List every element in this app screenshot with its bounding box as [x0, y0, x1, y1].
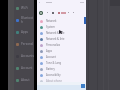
- button[interactable]: About phone: [37, 78, 86, 84]
- staticText: Account: [46, 55, 56, 59]
- button[interactable]: About: [14, 74, 34, 86]
- staticText: Accessibility: [46, 73, 61, 77]
- staticText: Network: [46, 19, 57, 23]
- staticText: Bluetooth: [21, 16, 34, 24]
- button[interactable]: Personaliza: [37, 42, 86, 48]
- staticText: Personal: [21, 42, 34, 46]
- staticText: Network & Inte: [46, 31, 65, 35]
- staticText: Wi-Fi: [21, 6, 28, 10]
- button[interactable]: Accessibility: [37, 72, 86, 78]
- staticText: Apps: [46, 49, 53, 53]
- button[interactable]: Network: [37, 18, 86, 24]
- button[interactable]: Apps: [14, 26, 34, 38]
- staticText: Network & Inte: [46, 37, 65, 41]
- button[interactable]: Battery: [37, 66, 86, 72]
- button[interactable]: Network & Inte: [37, 36, 86, 42]
- staticText: Apps: [21, 30, 29, 34]
- button[interactable]: Account: [37, 54, 86, 60]
- staticText: Personaliza: [46, 43, 60, 47]
- staticText: Battery: [46, 67, 55, 71]
- button[interactable]: Tone & Lang: [37, 60, 86, 66]
- button[interactable]: Accounts: [14, 50, 34, 62]
- staticText: About: [21, 78, 30, 82]
- button[interactable]: Account: [14, 62, 34, 74]
- button[interactable]: Bluetooth: [14, 14, 34, 26]
- button[interactable]: Apps: [37, 48, 86, 54]
- button[interactable]: Network & Inte: [37, 30, 86, 36]
- staticText: Account: [21, 66, 33, 70]
- staticText: About phone: [46, 79, 62, 83]
- staticText: System: [46, 25, 55, 29]
- button[interactable]: System: [37, 24, 86, 30]
- button[interactable]: Personal: [14, 38, 34, 50]
- staticText: Accounts: [21, 54, 34, 58]
- staticText: Tone & Lang: [46, 61, 62, 65]
- button[interactable]: Wi-Fi: [14, 2, 34, 14]
